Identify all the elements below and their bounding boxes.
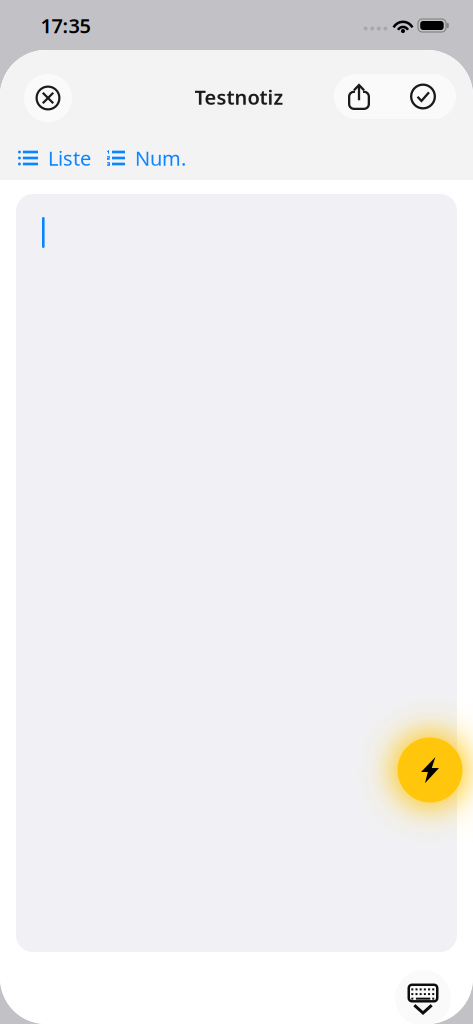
staticText: Num. xyxy=(135,145,186,171)
button[interactable]: Schließen xyxy=(24,74,72,122)
staticText: Liste xyxy=(48,145,91,171)
button[interactable]: Tastatur ausblenden xyxy=(395,970,451,1024)
button[interactable]: Teilen xyxy=(331,74,387,119)
button[interactable]: Num. xyxy=(105,136,186,180)
button[interactable]: Liste xyxy=(18,136,91,180)
staticText: Testnotiz xyxy=(194,84,283,110)
button[interactable]: Schnellaktion xyxy=(397,737,462,802)
button[interactable]: Fertig xyxy=(395,74,451,119)
staticText: 17:35 xyxy=(40,12,90,39)
